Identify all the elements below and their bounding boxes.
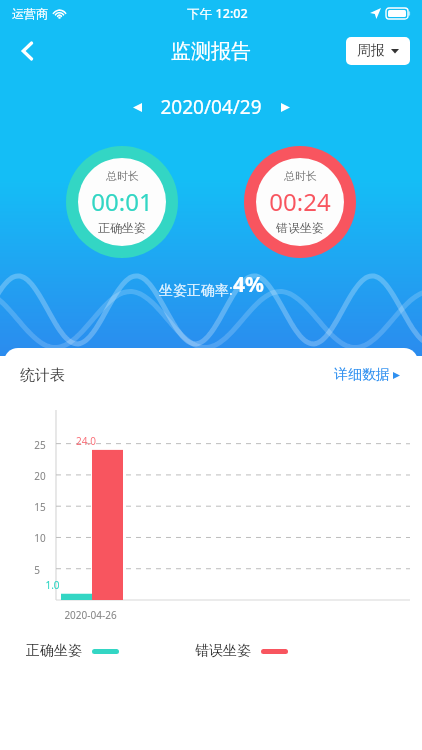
staticText: 2020/04/29 xyxy=(160,94,262,120)
staticText: 统计表 xyxy=(20,366,65,385)
staticText: 坐姿正确率: xyxy=(159,280,233,299)
staticText: 错误坐姿 xyxy=(276,220,324,235)
staticText: 24.0 xyxy=(76,434,96,448)
staticText: 运营商 xyxy=(12,6,48,21)
staticText: 下午 12:02 xyxy=(187,5,248,22)
staticText: 00:01 xyxy=(91,185,153,218)
staticText: 错误坐姿 xyxy=(195,642,251,660)
button[interactable]: Back xyxy=(6,29,50,73)
staticText: 正确坐姿 xyxy=(26,642,82,660)
staticText: 5 xyxy=(34,563,40,577)
button[interactable]: Previous week xyxy=(122,92,152,122)
staticText: 总时长 xyxy=(106,169,139,183)
button[interactable]: 总时长 xyxy=(244,146,356,258)
button[interactable]: 总时长 xyxy=(66,146,178,258)
staticText: 15 xyxy=(34,500,46,514)
staticText: 详细数据 xyxy=(334,366,390,384)
staticText: 周报 xyxy=(357,42,385,60)
button[interactable]: Next week xyxy=(270,92,300,122)
staticText: 2020-04-26 xyxy=(64,608,117,622)
button[interactable]: 详细数据 xyxy=(330,362,404,388)
staticText: 00:24 xyxy=(269,185,331,218)
staticText: 4% xyxy=(233,270,264,299)
staticText: 20 xyxy=(34,469,46,483)
staticText: 监测报告 xyxy=(171,39,251,64)
button[interactable]: 周报 xyxy=(346,37,410,65)
staticText: 10 xyxy=(34,531,46,545)
button[interactable]: 错误坐姿 xyxy=(193,638,290,664)
staticText: 总时长 xyxy=(284,169,317,183)
staticText: 正确坐姿 xyxy=(98,220,146,235)
staticText: 25 xyxy=(34,438,46,452)
button[interactable]: 正确坐姿 xyxy=(24,638,121,664)
staticText: 1.0 xyxy=(45,578,60,592)
